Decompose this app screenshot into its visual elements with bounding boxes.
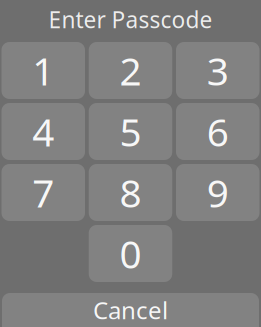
staticText: 6	[207, 106, 229, 157]
button[interactable]: 4	[1, 103, 85, 160]
staticText: 5	[119, 106, 141, 157]
button[interactable]: 0	[89, 225, 172, 282]
button[interactable]: 1	[1, 42, 85, 99]
button[interactable]: 2	[89, 42, 172, 99]
staticText: 3	[207, 45, 229, 96]
button[interactable]: 7	[1, 164, 85, 221]
button[interactable]: 8	[89, 164, 172, 221]
staticText: 0	[119, 228, 141, 279]
button[interactable]: 3	[176, 42, 259, 99]
button[interactable]: 6	[176, 103, 259, 160]
button[interactable]: 9	[176, 164, 259, 221]
staticText: 7	[32, 167, 54, 218]
button[interactable]: 5	[89, 103, 172, 160]
staticText: Cancel	[93, 294, 168, 326]
staticText: 1	[32, 45, 54, 96]
staticText: 4	[32, 106, 54, 157]
staticText: 9	[207, 167, 229, 218]
staticText: 8	[119, 167, 141, 218]
staticText: 2	[119, 45, 141, 96]
staticText: Enter Passcode	[48, 4, 212, 34]
button[interactable]: Cancel	[2, 293, 259, 327]
